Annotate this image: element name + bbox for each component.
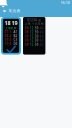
staticText: 08 — [25, 30, 29, 34]
staticText: 12 — [30, 30, 34, 34]
staticText: 08 — [25, 43, 29, 46]
button[interactable]: G1234 次 — [23, 17, 45, 55]
staticText: 12 — [30, 35, 34, 38]
staticText: 08 — [25, 26, 29, 30]
button[interactable]: 18 19 — [1, 17, 21, 55]
staticText: 44 — [40, 30, 44, 34]
staticText: 上海 → 北京南 — [25, 22, 44, 25]
staticText: 08:2 — [4, 34, 11, 38]
staticText: 44 — [40, 43, 44, 46]
button[interactable]: Back — [3, 9, 7, 13]
staticText: 30 — [35, 35, 39, 38]
staticText: 12 — [30, 39, 34, 42]
staticText: 30 — [35, 30, 39, 34]
staticText: C3 — [13, 38, 17, 41]
staticText: 09:3 — [4, 38, 11, 41]
staticText: A1 — [13, 30, 17, 34]
staticText: D4 — [13, 42, 17, 45]
staticText: 30 — [35, 26, 39, 30]
staticText: 07:1 — [4, 30, 11, 34]
staticText: B2 — [13, 34, 17, 38]
staticText: 44 — [40, 26, 44, 30]
staticText: 16:18 — [60, 0, 69, 5]
staticText: 08 — [25, 39, 29, 42]
staticText: 44 — [40, 39, 44, 42]
staticText: 30 — [35, 39, 39, 42]
staticText: 12 — [30, 26, 34, 30]
staticText: 车次表 — [9, 8, 21, 13]
staticText: 08 — [25, 35, 29, 38]
staticText: 12 — [30, 43, 34, 46]
staticText: 10:4 — [4, 42, 11, 45]
staticText: 18 19 — [4, 19, 17, 26]
staticText: 上海虹桥 — [5, 26, 17, 30]
staticText: 44 — [40, 35, 44, 38]
staticText: G1234 次 — [27, 18, 41, 22]
staticText: 30 — [35, 43, 39, 46]
